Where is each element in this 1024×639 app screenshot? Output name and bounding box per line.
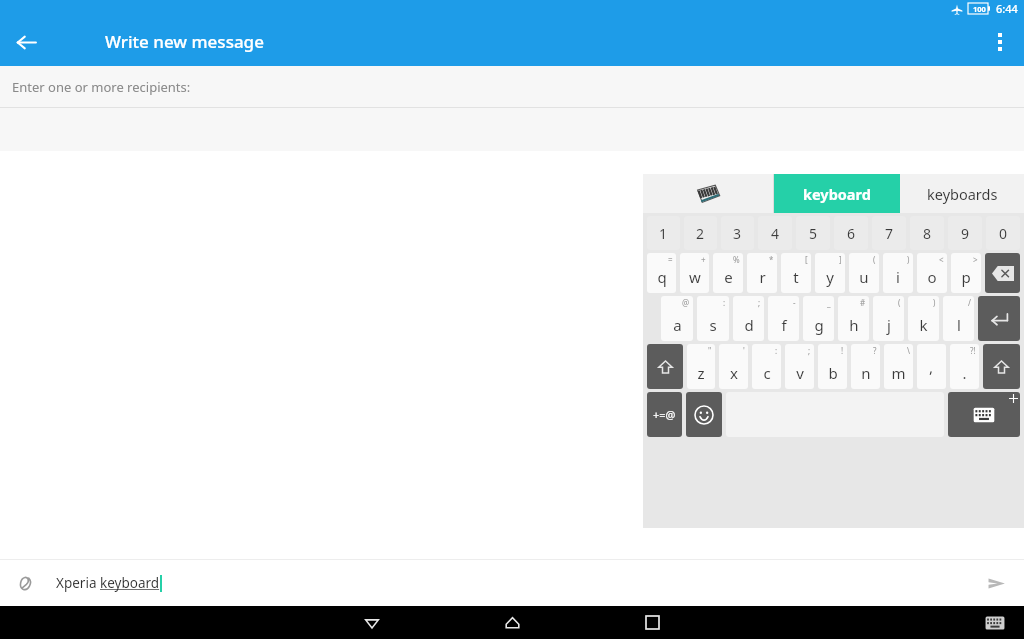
button[interactable]: ) [883,253,913,293]
button[interactable]: ; [733,296,764,341]
staticText: c [763,363,771,383]
button[interactable]: " [687,344,715,389]
button[interactable]: : [752,344,781,389]
staticText: 6:44 [996,1,1018,16]
button[interactable]: Attach [6,565,42,601]
button[interactable]: ] [815,253,845,293]
staticText: n [861,363,871,383]
staticText: - [793,297,796,308]
staticText: ; [808,345,811,356]
button[interactable]: Switch keyboard [978,606,1012,639]
staticText: ! [841,345,844,356]
staticText: d [744,315,754,335]
button[interactable]: : [697,296,729,341]
staticText: [ [805,254,808,265]
button[interactable]: ( [849,253,879,293]
staticText: ?! [970,345,976,356]
button[interactable]: Send [976,563,1016,603]
button[interactable]: keyboards [900,174,1024,213]
staticText: . [962,363,967,383]
staticText: ? [873,345,877,356]
button[interactable]: ) [908,296,939,341]
button[interactable]: Enter [978,296,1020,341]
button[interactable]: 9 [948,216,982,250]
staticText: > [973,254,978,265]
staticText: ' [743,345,745,356]
button[interactable] [643,174,773,213]
button[interactable]: ? [851,344,880,389]
staticText: +=@ [653,407,676,422]
staticText: x [730,363,738,383]
button[interactable]: 6 [834,216,868,250]
button[interactable]: keyboard [774,174,900,213]
button[interactable]: < [917,253,947,293]
button[interactable]: \ [884,344,913,389]
staticText: 6 [847,224,856,243]
button[interactable]: Back [8,24,44,60]
staticText: e [724,267,733,287]
button[interactable]: ! [818,344,847,389]
button[interactable]: 7 [872,216,906,250]
staticText: y [826,267,834,287]
staticText: 100 [973,4,986,14]
staticText: ] [839,254,842,265]
button[interactable]: - [768,296,799,341]
staticText: ) [907,254,910,265]
button[interactable]: + [680,253,709,293]
button[interactable]: Keyboard settings [948,392,1020,437]
staticText: ( [898,297,901,308]
staticText: t [793,267,799,287]
button[interactable]: % [713,253,743,293]
staticText: 1 [659,224,668,243]
button[interactable]: Back [347,606,397,639]
button[interactable]: > [951,253,981,293]
button[interactable]: Recents [627,606,677,639]
button[interactable]: ' [719,344,748,389]
staticText: keyboard [803,184,871,204]
button[interactable]: 5 [796,216,830,250]
button[interactable]: ?! [950,344,979,389]
button[interactable]: [ [781,253,811,293]
staticText: m [891,363,906,383]
button[interactable]: 3 [721,216,754,250]
button[interactable]: 4 [758,216,792,250]
button[interactable]: = [647,253,676,293]
button[interactable]: 2 [684,216,717,250]
button[interactable]: / [943,296,974,341]
button[interactable]: More options [980,22,1020,62]
staticText: + [701,254,706,265]
button[interactable]: 0 [986,216,1020,250]
staticText: 3 [733,224,742,243]
button[interactable]: ; [785,344,814,389]
staticText: 4 [771,224,780,243]
staticText: % [733,254,740,265]
button[interactable]: Enter one or more recipients: [0,66,1024,108]
staticText: w [689,267,701,287]
button[interactable]: Symbols [647,392,682,437]
button[interactable]: Shift [647,344,683,389]
button[interactable]: 1 [647,216,680,250]
staticText: v [796,363,804,383]
staticText: keyboards [927,184,998,204]
staticText: : [775,345,778,356]
button[interactable]: Backspace [985,253,1020,293]
staticText: l [957,315,961,335]
button[interactable]: * [747,253,777,293]
button[interactable]: @ [661,296,693,341]
staticText: keyboard [100,574,160,592]
button[interactable]: 8 [910,216,944,250]
staticText: : [723,297,726,308]
staticText: 9 [961,224,970,243]
staticText: s [709,315,717,335]
staticText: o [927,267,937,287]
button[interactable]: Home [487,606,537,639]
staticText: u [859,267,869,287]
button[interactable]: Shift [983,344,1020,389]
button[interactable]: _ [803,296,834,341]
staticText: p [961,267,971,287]
button[interactable]: , [917,344,946,389]
button[interactable]: Emoji [686,392,722,437]
button[interactable]: ( [873,296,904,341]
button[interactable]: # [838,296,869,341]
